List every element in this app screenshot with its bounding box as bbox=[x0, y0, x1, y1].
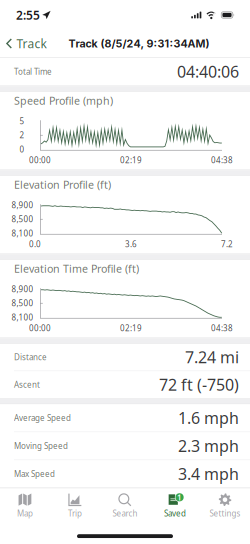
button[interactable]: Map bbox=[0, 488, 50, 522]
staticText: 3.4 mph bbox=[178, 463, 239, 484]
staticText: 8,100 bbox=[11, 312, 33, 323]
staticText: Elevation Profile (ft) bbox=[14, 178, 111, 192]
staticText: Saved bbox=[164, 508, 186, 519]
staticText: Trip bbox=[68, 508, 82, 519]
staticText: 04:38 bbox=[211, 155, 233, 165]
button[interactable]: 1 bbox=[150, 488, 200, 522]
staticText: Ascent bbox=[14, 379, 40, 390]
staticText: Search bbox=[112, 508, 137, 519]
staticText: 02:19 bbox=[120, 323, 142, 333]
staticText: 1 bbox=[177, 492, 182, 503]
button[interactable]: Track bbox=[0, 30, 52, 57]
staticText: 2 bbox=[19, 130, 24, 141]
staticText: Distance bbox=[14, 352, 47, 362]
staticText: 00:00 bbox=[29, 323, 51, 333]
staticText: 3.6 bbox=[125, 239, 137, 249]
staticText: 02:19 bbox=[120, 155, 142, 165]
staticText: Map bbox=[17, 508, 33, 519]
staticText: Track (8/5/24, 9:31:34AM) bbox=[68, 37, 209, 50]
staticText: 1.6 mph bbox=[178, 407, 239, 428]
staticText: 7.24 mi bbox=[185, 346, 239, 368]
staticText: Moving Speed bbox=[14, 440, 68, 451]
staticText: Track bbox=[16, 35, 46, 51]
staticText: Elevation Time Profile (ft) bbox=[14, 262, 139, 276]
staticText: Settings bbox=[209, 508, 240, 519]
staticText: 8,500 bbox=[11, 214, 33, 225]
staticText: 2:55 bbox=[16, 7, 40, 23]
staticText: 8,100 bbox=[11, 228, 33, 239]
staticText: 04:38 bbox=[211, 323, 233, 333]
staticText: 5 bbox=[19, 116, 24, 126]
staticText: 0.0 bbox=[29, 239, 41, 249]
staticText: Speed Profile (mph) bbox=[14, 94, 113, 108]
staticText: 00:00 bbox=[29, 155, 51, 165]
staticText: 8,900 bbox=[11, 200, 33, 210]
staticText: 7.2 bbox=[221, 239, 233, 249]
button[interactable]: Search bbox=[100, 488, 150, 522]
staticText: Average Speed bbox=[14, 412, 71, 423]
staticText: 0 bbox=[19, 144, 24, 155]
button[interactable]: Trip bbox=[50, 488, 100, 522]
staticText: 8,900 bbox=[11, 284, 33, 294]
staticText: 8,500 bbox=[11, 298, 33, 309]
staticText: 2.3 mph bbox=[178, 435, 239, 456]
staticText: 04:40:06 bbox=[177, 61, 239, 82]
staticText: 72 ft (-750) bbox=[159, 374, 239, 395]
staticText: Max Speed bbox=[14, 468, 55, 479]
staticText: Total Time bbox=[14, 66, 52, 77]
button[interactable]: Settings bbox=[200, 488, 250, 522]
